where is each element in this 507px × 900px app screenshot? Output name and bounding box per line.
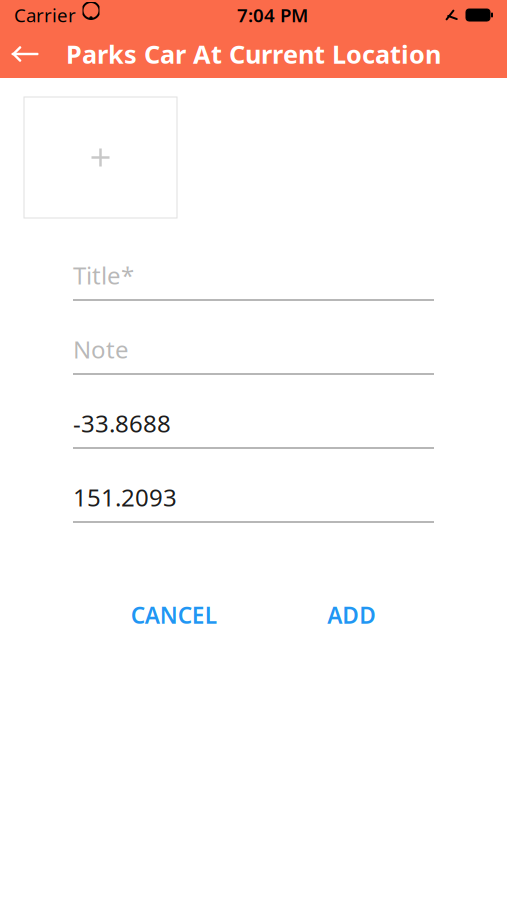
button[interactable]: Back xyxy=(0,32,50,76)
button[interactable]: ADD xyxy=(311,590,392,640)
staticText: Parks Car At Current Location xyxy=(66,37,441,71)
staticText: Title* xyxy=(73,259,134,291)
staticText: CANCEL xyxy=(131,600,217,630)
staticText: 7:04 PM xyxy=(237,3,308,27)
button[interactable]: Add photo xyxy=(24,97,177,218)
staticText: 151.2093 xyxy=(73,481,177,513)
staticText: Note xyxy=(73,333,129,365)
staticText: -33.8688 xyxy=(73,407,171,439)
staticText: ADD xyxy=(327,600,376,630)
button[interactable]: CANCEL xyxy=(115,590,233,640)
staticText: Carrier xyxy=(14,3,76,27)
